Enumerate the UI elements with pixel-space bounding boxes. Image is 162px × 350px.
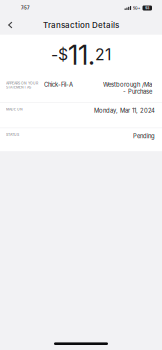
- staticText: 93: [145, 6, 149, 10]
- button[interactable]: Back: [0, 17, 20, 32]
- staticText: -$11.21: [51, 39, 111, 71]
- staticText: Westborough /Ma - Purchase: [102, 81, 151, 95]
- staticText: APPEARS ON YOUR STATEMENT AS: [6, 81, 38, 89]
- staticText: Chick-Fil-A: [44, 81, 73, 88]
- staticText: MADE ON: [6, 107, 23, 111]
- staticText: Pending: [132, 133, 154, 140]
- staticText: 7:57: [21, 5, 30, 11]
- staticText: STATUS: [6, 133, 19, 137]
- staticText: Monday, Mar 11, 2024: [93, 107, 154, 114]
- staticText: 5G+: [133, 6, 141, 10]
- staticText: Transaction Details: [43, 20, 119, 30]
